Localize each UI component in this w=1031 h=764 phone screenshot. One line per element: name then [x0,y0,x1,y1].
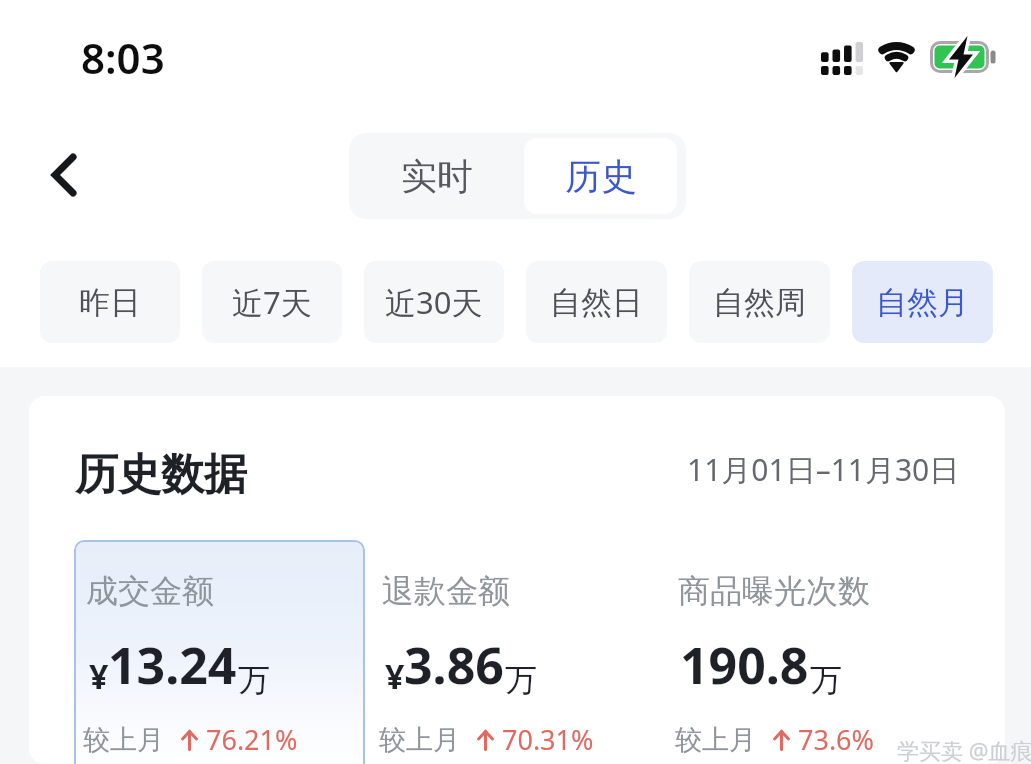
staticText: 万 [238,660,270,700]
staticText: 73.6% [798,721,875,758]
staticText: 历史 [565,154,637,199]
staticText: 万 [505,660,537,700]
staticText: 近7天 [232,281,312,323]
button[interactable]: 成交金额 [74,540,365,764]
staticText: 自然月 [876,283,969,322]
button[interactable]: 近30天 [364,261,504,343]
staticText: 3.86 [404,631,504,699]
staticText: 较上月 [83,723,164,757]
staticText: 自然日 [550,283,643,322]
staticText: 成交金额 [86,571,214,611]
staticText: 商品曝光次数 [678,571,870,611]
staticText: ¥ [89,653,109,699]
staticText: 190.8 [680,631,809,699]
button[interactable]: 商品曝光次数 [666,540,966,764]
staticText: ¥ [385,653,405,699]
staticText: 实时 [401,154,473,199]
staticText: 历史数据 [75,448,247,502]
staticText: 较上月 [675,723,756,757]
button[interactable]: 近7天 [202,261,342,343]
staticText: 76.21% [206,721,298,758]
staticText: 较上月 [379,723,460,757]
staticText: 近30天 [385,281,483,323]
button[interactable]: 昨日 [40,261,180,343]
button[interactable]: 实时 [349,133,524,219]
button[interactable]: 自然周 [689,261,830,343]
staticText: 11月01日–11月30日 [687,449,960,490]
staticText: 70.31% [502,721,594,758]
staticText: 万 [810,660,842,700]
staticText: 8:03 [81,29,165,86]
staticText: 13.24 [108,631,237,699]
button[interactable]: 自然日 [526,261,667,343]
button[interactable]: 自然月 [852,261,993,343]
staticText: 昨日 [79,283,141,322]
staticText: 退款金额 [382,571,510,611]
staticText: 自然周 [713,283,806,322]
staticText: 学买卖 @血痕 [897,735,1031,764]
button[interactable]: Back [36,148,90,202]
button[interactable]: 历史 [524,138,677,214]
button[interactable]: 退款金额 [370,540,661,764]
